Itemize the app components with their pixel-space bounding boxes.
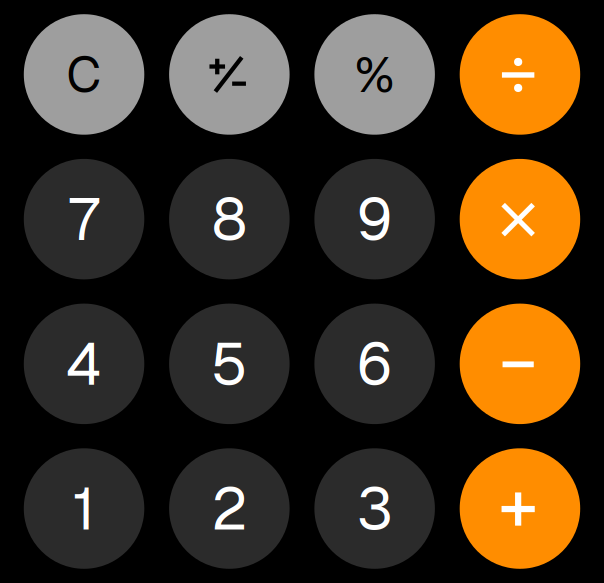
button[interactable]: 2 [169,448,290,569]
staticText: 9 [356,181,393,257]
staticText: 2 [211,470,247,547]
button[interactable]: 9 [314,159,435,279]
button[interactable]: % [314,14,435,135]
button[interactable]: Add [460,448,580,569]
button[interactable]: 4 [24,304,144,424]
button[interactable]: 8 [169,159,290,279]
staticText: 1 [73,470,96,547]
button[interactable]: Subtract [460,304,580,424]
staticText: % [355,42,395,106]
staticText: 7 [69,181,100,257]
staticText: 5 [211,326,248,402]
button[interactable]: Multiply [460,159,580,279]
staticText: 8 [212,181,247,257]
button[interactable]: Toggle sign [169,14,290,135]
staticText: 4 [66,326,102,402]
button[interactable]: 6 [314,304,435,424]
button[interactable]: 7 [24,159,144,279]
button[interactable]: 5 [169,304,290,424]
staticText: 3 [357,470,393,547]
button[interactable]: 1 [24,448,144,569]
staticText: 6 [356,326,393,402]
staticText: C [67,42,102,106]
button[interactable]: Divide [460,14,580,135]
button[interactable]: 3 [314,448,435,569]
button[interactable]: C [24,14,144,135]
